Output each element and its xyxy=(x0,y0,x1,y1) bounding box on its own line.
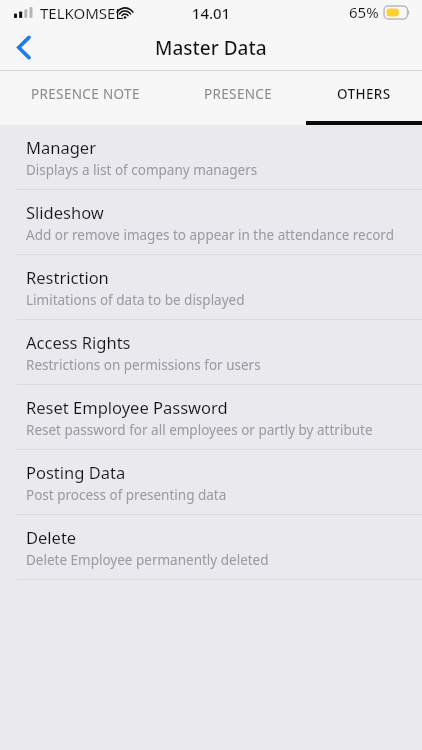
staticText: TELKOMSEL xyxy=(40,3,124,23)
staticText: Reset Employee Password xyxy=(26,396,228,418)
staticText: Displays a list of company managers xyxy=(26,161,258,179)
staticText: Slideshow xyxy=(26,201,104,223)
staticText: Restriction xyxy=(26,266,109,288)
button[interactable]: Slideshow xyxy=(0,190,422,255)
button[interactable]: Access Rights xyxy=(0,320,422,385)
staticText: Posting Data xyxy=(26,461,126,483)
staticText: Manager xyxy=(26,136,96,158)
staticText: 65% xyxy=(349,2,379,22)
button[interactable]: Delete xyxy=(0,515,422,580)
button[interactable]: Posting Data xyxy=(0,450,422,515)
staticText: Master Data xyxy=(155,35,267,61)
staticText: Post process of presenting data xyxy=(26,486,227,504)
staticText: Limitations of data to be displayed xyxy=(26,291,245,309)
button[interactable]: OTHERS xyxy=(306,71,422,125)
staticText: 14.01 xyxy=(0,3,422,23)
staticText: Delete Employee permanently deleted xyxy=(26,551,269,569)
staticText: Add or remove images to appear in the at… xyxy=(26,226,394,244)
staticText: PRESENCE NOTE xyxy=(31,85,140,103)
staticText: Delete xyxy=(26,526,77,548)
button[interactable]: Back xyxy=(0,24,45,71)
staticText: Reset password for all employees or part… xyxy=(26,421,373,439)
staticText: PRESENCE xyxy=(204,85,273,103)
staticText: Restrictions on permissions for users xyxy=(26,356,261,374)
button[interactable]: Restriction xyxy=(0,255,422,320)
button[interactable]: Reset Employee Password xyxy=(0,385,422,450)
button[interactable]: Manager xyxy=(0,125,422,190)
staticText: OTHERS xyxy=(337,85,391,103)
button[interactable]: PRESENCE xyxy=(171,71,306,125)
button[interactable]: PRESENCE NOTE xyxy=(0,71,171,125)
staticText: Access Rights xyxy=(26,331,131,353)
